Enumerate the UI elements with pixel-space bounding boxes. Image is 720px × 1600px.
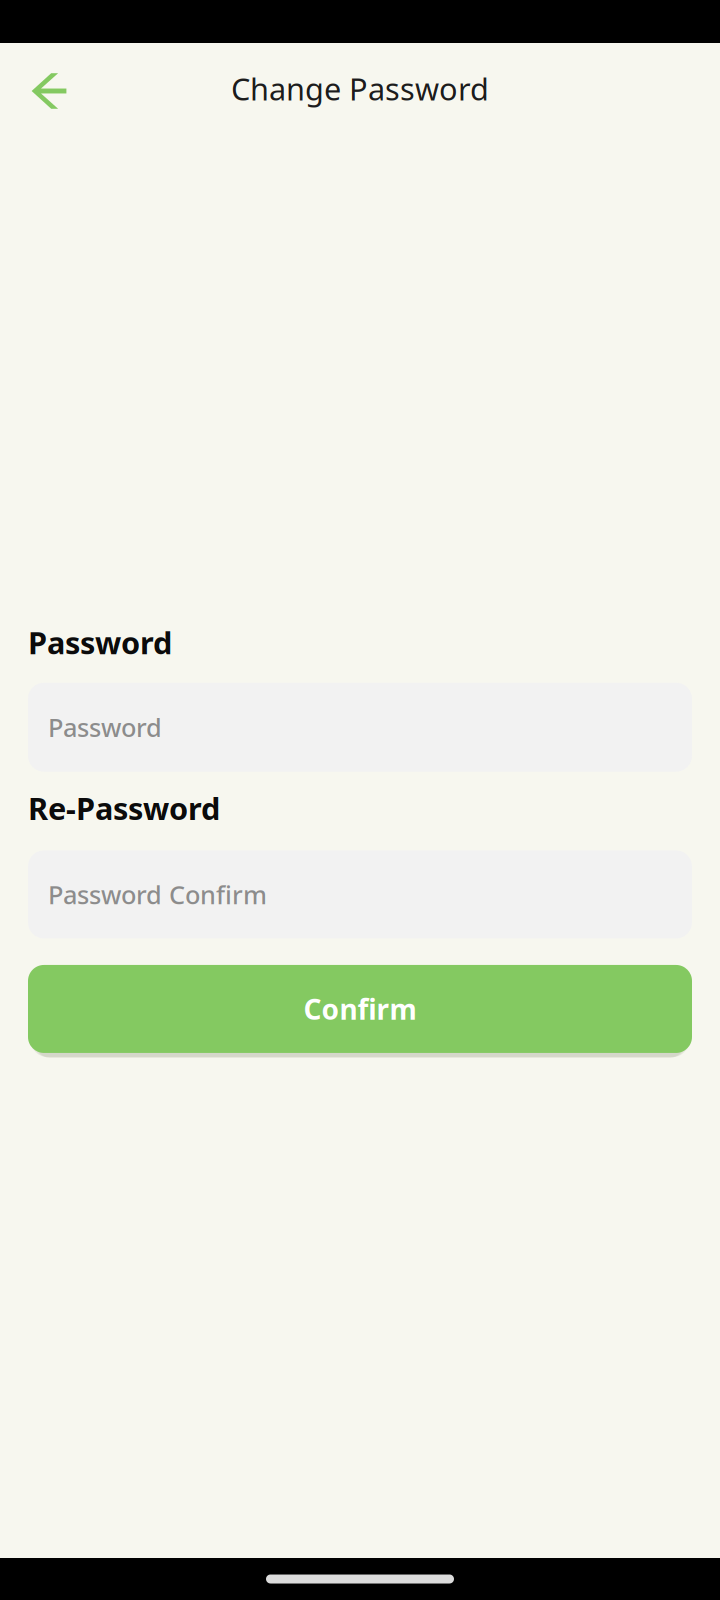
staticText: Re-Password <box>28 788 220 828</box>
staticText: Password <box>48 710 162 744</box>
staticText: Confirm <box>303 990 416 1028</box>
button[interactable]: Password Confirm <box>28 850 692 938</box>
staticText: Password <box>28 622 172 663</box>
button[interactable]: Password <box>28 683 692 772</box>
staticText: Change Password <box>231 68 489 109</box>
staticText: Password Confirm <box>48 878 267 911</box>
button[interactable]: Confirm <box>28 965 692 1058</box>
button[interactable]: Back <box>20 62 78 120</box>
